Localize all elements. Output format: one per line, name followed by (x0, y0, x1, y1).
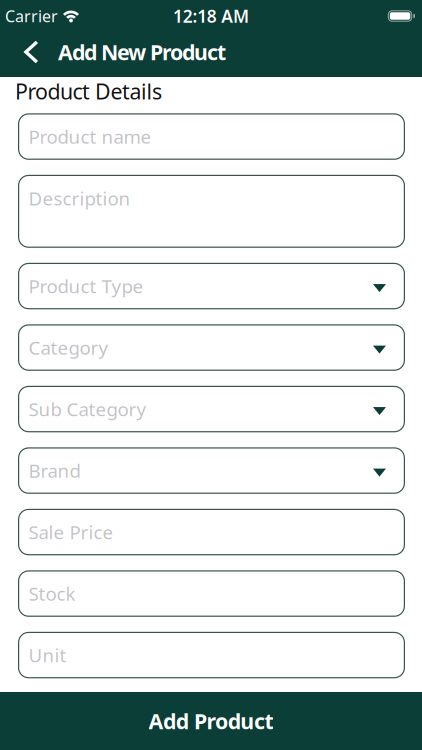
staticText: Add New Product (58, 38, 226, 66)
staticText: Product Type (28, 274, 143, 298)
staticText: Sale Price (28, 520, 113, 544)
staticText: Description (28, 186, 130, 211)
button[interactable]: Sub Category picker (0, 386, 422, 432)
staticText: Add Product (148, 707, 273, 735)
button[interactable]: Back (0, 40, 38, 64)
button[interactable]: Brand picker (0, 447, 422, 494)
button[interactable]: Product name text field (0, 113, 422, 160)
button[interactable]: Product Type picker (0, 263, 422, 309)
staticText: Product name (28, 124, 151, 149)
staticText: Product Details (15, 77, 162, 105)
staticText: Stock (28, 581, 75, 606)
button[interactable]: Unit text field (0, 632, 422, 678)
staticText: Unit (28, 643, 66, 667)
staticText: Category (28, 335, 108, 360)
button[interactable]: Add Product (0, 692, 422, 750)
staticText: Carrier (5, 5, 58, 27)
button[interactable]: Sale Price text field (0, 509, 422, 555)
button[interactable]: Description text field (0, 175, 422, 248)
button[interactable]: Category picker (0, 324, 422, 371)
button[interactable]: Stock text field (0, 570, 422, 617)
staticText: Brand (28, 458, 80, 483)
staticText: 12:18 AM (173, 4, 249, 27)
staticText: Sub Category (28, 397, 146, 421)
